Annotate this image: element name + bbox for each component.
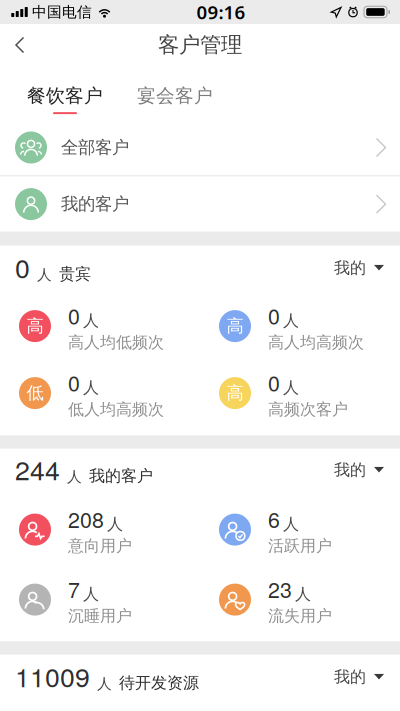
staticText: 11009 [15, 657, 90, 695]
staticText: 人 [295, 584, 311, 604]
staticText: 244 [15, 450, 60, 488]
staticText: 人 [107, 514, 123, 534]
staticText: 我的客户 [89, 466, 153, 486]
staticText: 意向用户 [68, 536, 132, 556]
button[interactable]: 我的 [334, 662, 384, 695]
button[interactable]: 我的 [334, 253, 384, 286]
staticText: 人 [83, 584, 99, 604]
staticText: 人 [283, 514, 299, 534]
button[interactable]: 7 [0, 565, 200, 635]
staticText: 高频次客户 [268, 399, 348, 419]
staticText: 餐饮客户 [27, 84, 103, 107]
staticText: 流失用户 [268, 606, 332, 626]
staticText: 贵宾 [59, 264, 91, 284]
button[interactable]: 高 [0, 293, 200, 360]
staticText: 人 [283, 311, 299, 331]
button[interactable]: 餐饮客户 [26, 84, 104, 114]
staticText: 208 [68, 503, 104, 534]
staticText: 高 [26, 315, 43, 337]
staticText: 我的 [334, 258, 366, 278]
staticText: 我的 [334, 667, 366, 687]
staticText: 高人均高频次 [268, 332, 364, 352]
staticText: 低 [26, 382, 43, 404]
button[interactable]: 高 [200, 293, 400, 360]
button[interactable]: 全部客户 [0, 120, 400, 175]
button[interactable]: 23 [200, 565, 400, 635]
staticText: 我的客户 [61, 193, 129, 215]
button[interactable]: 低 [0, 360, 200, 427]
button[interactable]: 宴会客户 [136, 84, 214, 114]
button[interactable]: Back [0, 23, 40, 66]
button[interactable]: 208 [0, 495, 200, 565]
staticText: 高 [226, 382, 243, 404]
staticText: 09:16 [196, 0, 245, 24]
staticText: 人 [283, 378, 299, 398]
staticText: 23 [268, 573, 292, 604]
staticText: 高 [226, 315, 243, 337]
button[interactable]: 我的 [334, 455, 384, 488]
staticText: 人 [67, 468, 82, 486]
staticText: 高人均低频次 [68, 332, 164, 352]
button[interactable]: 6 [200, 495, 400, 565]
staticText: 0 [15, 248, 30, 286]
staticText: 全部客户 [61, 137, 129, 158]
staticText: 0 [68, 300, 80, 330]
staticText: 沉睡用户 [68, 606, 132, 626]
staticText: 7 [68, 573, 80, 604]
staticText: 人 [83, 311, 99, 331]
staticText: 客户管理 [158, 32, 242, 58]
staticText: 0 [268, 367, 280, 397]
staticText: 低人均高频次 [68, 399, 164, 419]
staticText: 人 [83, 378, 99, 398]
staticText: 0 [268, 300, 280, 330]
staticText: 人 [37, 266, 52, 284]
staticText: 0 [68, 367, 80, 397]
button[interactable]: 我的客户 [0, 177, 400, 232]
staticText: 宴会客户 [137, 84, 213, 107]
staticText: 6 [268, 503, 280, 534]
staticText: 我的 [334, 460, 366, 480]
staticText: 中国电信 [32, 3, 92, 21]
button[interactable]: 高 [200, 360, 400, 427]
staticText: 活跃用户 [268, 536, 332, 556]
staticText: 人 [97, 675, 112, 693]
staticText: 待开发资源 [119, 673, 199, 693]
